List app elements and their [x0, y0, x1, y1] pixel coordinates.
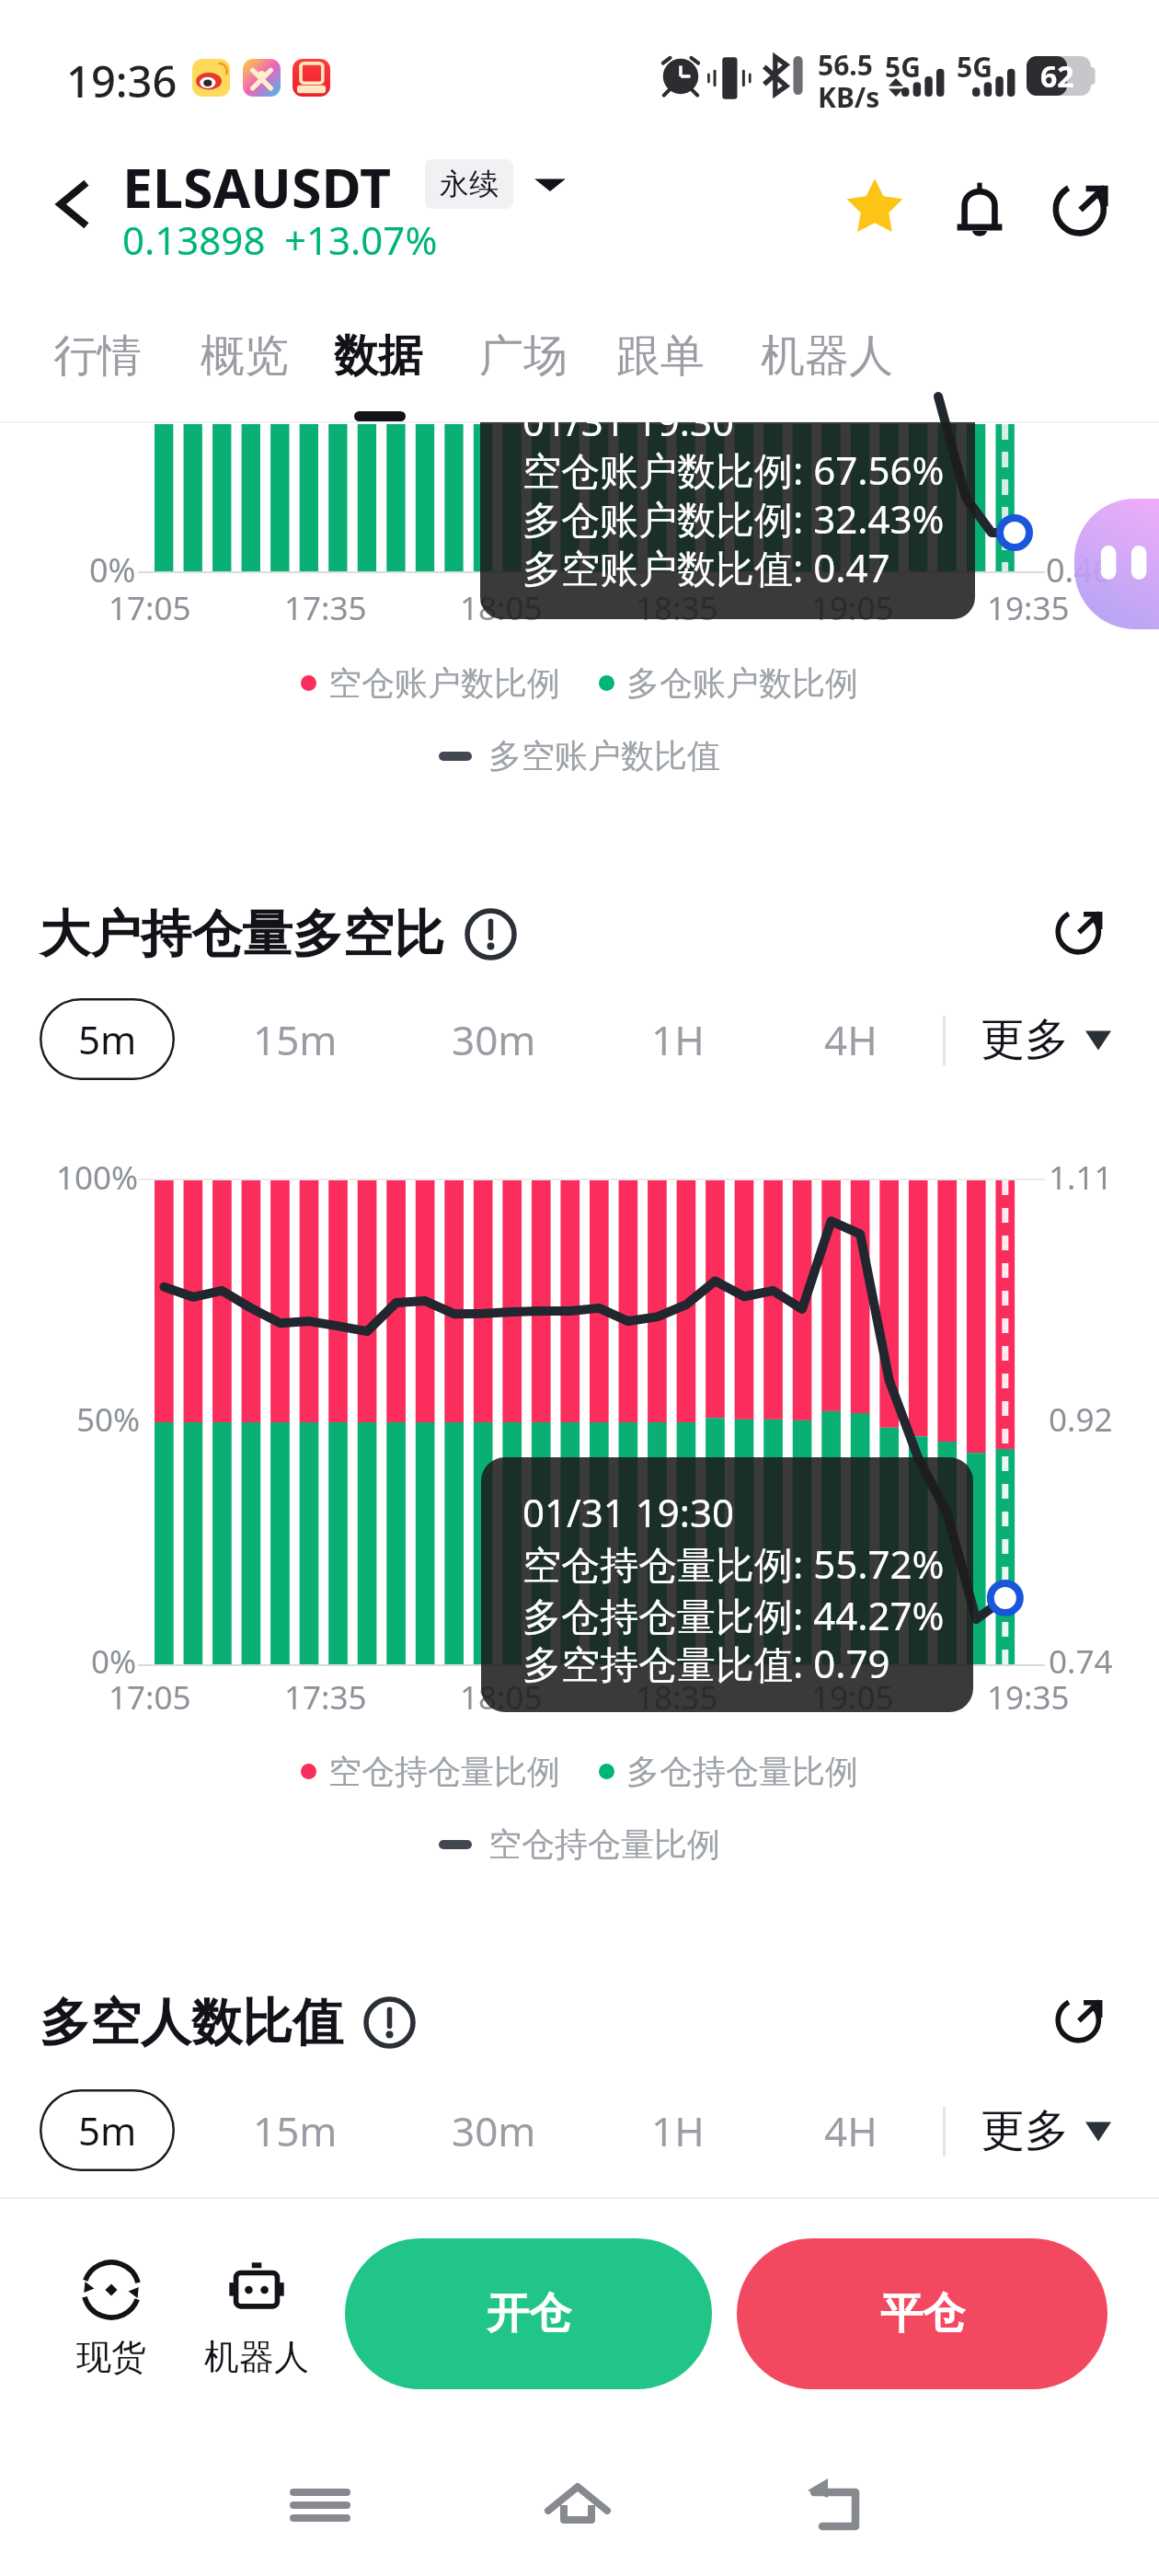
staticText: 1.11	[1049, 1156, 1113, 1200]
staticText: 多空持仓量比值: 0.79	[522, 1637, 890, 1689]
staticText: 18:05	[460, 586, 543, 630]
staticText: 5G	[885, 48, 921, 86]
staticText: 机器人	[761, 328, 893, 384]
staticText: 概览	[201, 328, 289, 384]
staticText: 多仓持仓量比例: 44.27%	[522, 1589, 945, 1641]
button[interactable]: Recent apps	[274, 2459, 366, 2551]
staticText: 大户持仓量多空比	[40, 903, 444, 966]
button[interactable]: 概览	[186, 317, 304, 395]
staticText: 4H	[824, 1012, 878, 1067]
button[interactable]: 机器人	[746, 317, 908, 395]
staticText: ELSAUSDT	[122, 150, 391, 224]
button[interactable]: 开仓	[345, 2238, 712, 2389]
button[interactable]: 30m	[428, 2089, 560, 2171]
staticText: 跟单	[616, 328, 705, 384]
staticText: 17:35	[284, 586, 367, 630]
button[interactable]: 1H	[612, 2089, 744, 2171]
staticText: 5m	[78, 1013, 137, 1065]
button[interactable]: 永续	[425, 159, 513, 209]
staticText: 机器人	[204, 2335, 309, 2379]
staticText: 永续	[440, 166, 499, 202]
button[interactable]: 4H	[785, 998, 917, 1080]
staticText: 30m	[452, 2103, 536, 2158]
button[interactable]: 15m	[229, 2089, 361, 2171]
button[interactable]: 30m	[428, 998, 560, 1080]
staticText: 62	[1040, 56, 1074, 96]
staticText: 多仓持仓量比例	[626, 1751, 858, 1792]
staticText: 100%	[56, 1156, 139, 1200]
button[interactable]: 行情	[39, 317, 156, 395]
button[interactable]: 更多	[981, 998, 1111, 1080]
button[interactable]: 5m	[40, 998, 175, 1080]
staticText: 18:35	[636, 1675, 718, 1719]
staticText: 空仓持仓量比例	[328, 1751, 560, 1792]
staticText: 15m	[253, 1012, 338, 1067]
button[interactable]: Share	[1046, 168, 1119, 242]
staticText: 多空人数比值	[40, 1991, 343, 2054]
staticText: 数据	[334, 328, 422, 384]
staticText: 15m	[253, 2103, 338, 2158]
button[interactable]: 广场	[465, 317, 582, 395]
button[interactable]: Back	[789, 2459, 881, 2551]
staticText: 19:05	[811, 586, 894, 630]
staticText: 更多	[981, 2103, 1069, 2158]
button[interactable]: Back	[39, 170, 107, 238]
staticText: 17:35	[284, 1675, 367, 1719]
staticText: 4H	[824, 2103, 878, 2158]
button[interactable]: 数据	[319, 317, 437, 395]
staticText: 01/31 19:30	[522, 422, 734, 447]
staticText: +13.07%	[284, 213, 438, 266]
staticText: 0%	[89, 547, 136, 592]
staticText: 空仓账户数比例: 67.56%	[522, 443, 945, 496]
button[interactable]: 平仓	[737, 2238, 1107, 2389]
staticText: 19:35	[987, 1675, 1070, 1719]
button[interactable]: Open full chart	[1050, 897, 1112, 960]
staticText: 5G	[957, 48, 993, 86]
button[interactable]: 4H	[785, 2089, 917, 2171]
button[interactable]: 跟单	[602, 317, 719, 395]
staticText: 空仓账户数比例	[328, 662, 560, 704]
staticText: 17:05	[109, 1675, 191, 1719]
button[interactable]: 1H	[612, 998, 744, 1080]
staticText: 行情	[53, 328, 142, 384]
staticText: 多仓账户数比例	[626, 662, 858, 704]
staticText: 0.13898	[122, 213, 266, 266]
staticText: 0.92	[1049, 1397, 1113, 1442]
button[interactable]: 更多	[981, 2089, 1111, 2171]
staticText: 19:35	[987, 586, 1070, 630]
staticText: 5m	[78, 2104, 137, 2156]
staticText: 0.46	[1046, 547, 1112, 592]
staticText: 现货	[76, 2335, 146, 2379]
button[interactable]: Open full chart	[1050, 1985, 1112, 2048]
button[interactable]: 5m	[40, 2089, 175, 2171]
button[interactable]: Select contract type	[532, 166, 568, 202]
staticText: 平仓	[880, 2287, 965, 2340]
staticText: 开仓	[487, 2287, 571, 2340]
staticText: 18:05	[460, 1675, 543, 1719]
button[interactable]: 多空人数比值	[40, 1991, 416, 2054]
button[interactable]: 15m	[229, 998, 361, 1080]
staticText: 50%	[76, 1397, 141, 1442]
staticText: 1H	[651, 1012, 705, 1067]
button[interactable]: Assistant	[1074, 499, 1159, 629]
staticText: 更多	[981, 1012, 1069, 1067]
button[interactable]: Home	[532, 2459, 624, 2551]
staticText: 01/31 19:30	[522, 1486, 734, 1538]
staticText: 多仓账户数比例: 32.43%	[522, 492, 945, 545]
staticText: 17:05	[109, 586, 191, 630]
button[interactable]: 现货	[56, 2260, 166, 2379]
staticText: 56.5	[818, 46, 873, 84]
staticText: KB/s	[818, 78, 880, 116]
staticText: 19:05	[811, 1675, 894, 1719]
staticText: 广场	[479, 328, 568, 384]
staticText: 18:35	[636, 586, 718, 630]
staticText: 空仓持仓量比例: 55.72%	[522, 1537, 945, 1590]
staticText: 0.74	[1049, 1639, 1113, 1684]
staticText: 多空账户数比值	[488, 735, 720, 776]
button[interactable]: 大户持仓量多空比	[40, 903, 517, 966]
staticText: 多空账户数比值: 0.47	[522, 541, 890, 593]
button[interactable]: 机器人	[201, 2260, 312, 2379]
button[interactable]: Favorite	[838, 168, 912, 242]
button[interactable]: Price alert	[943, 168, 1016, 242]
staticText: 1H	[651, 2103, 705, 2158]
